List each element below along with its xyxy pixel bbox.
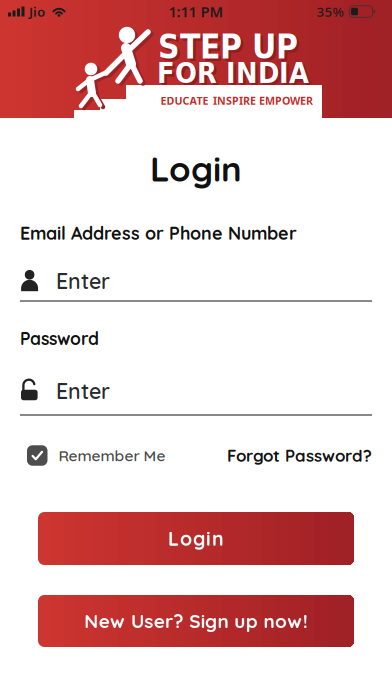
staticText: New User? Sign up now! (84, 609, 308, 633)
staticText: INSPIRE (213, 93, 256, 108)
staticText: Login (150, 147, 242, 190)
staticText: Email Address or Phone Number (20, 222, 297, 244)
staticText: STEP UP (160, 30, 300, 69)
staticText: Login (168, 526, 224, 551)
button[interactable]: Forgot Password? (192, 445, 372, 466)
staticText: EDUCATE (160, 93, 208, 108)
staticText: Remember Me (58, 446, 165, 465)
button[interactable]: New User? Sign up now! (38, 595, 354, 647)
button[interactable]: Remember Me (27, 445, 247, 466)
button[interactable]: Login (38, 512, 354, 565)
staticText: Jio (29, 3, 45, 20)
staticText: Enter (56, 378, 110, 404)
staticText: FOR INDIA (157, 56, 309, 90)
staticText: FOR INDIA (159, 59, 311, 92)
staticText: Forgot Password? (227, 445, 372, 466)
staticText: STEP UP (158, 28, 298, 66)
staticText: 35% (316, 3, 343, 20)
staticText: EMPOWER (259, 93, 313, 108)
staticText: Enter (56, 268, 110, 294)
staticText: Password (20, 328, 99, 349)
staticText: 1:11 PM (168, 2, 223, 21)
